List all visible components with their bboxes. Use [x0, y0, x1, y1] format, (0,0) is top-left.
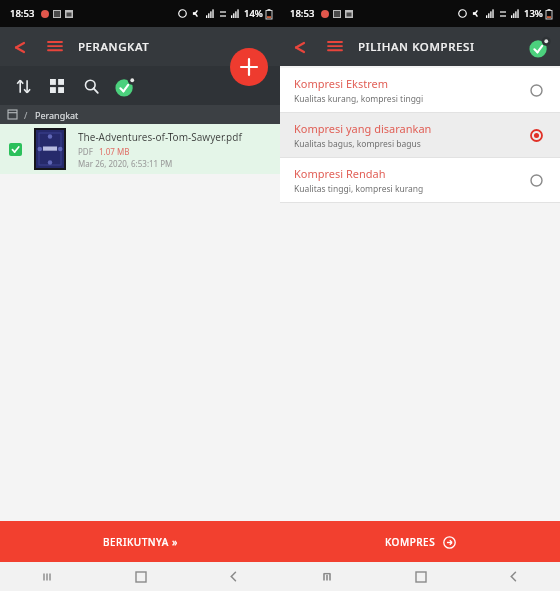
button[interactable]: Back — [280, 28, 318, 66]
staticText: PDF — [78, 146, 93, 157]
staticText: Perangkat — [35, 109, 79, 121]
button[interactable]: KOMPRES — [280, 521, 560, 562]
staticText: Mar 26, 2020, 6:53:11 PM — [78, 158, 173, 169]
button[interactable]: Search — [74, 69, 108, 103]
button[interactable]: BERIKUTNYA » — [0, 521, 280, 562]
button[interactable]: Sort — [6, 69, 40, 103]
staticText: Kompresi Ekstrem — [294, 76, 389, 91]
staticText: PERANGKAT — [78, 39, 150, 55]
staticText: 18:53 — [290, 7, 315, 20]
staticText: Kualitas kurang, kompresi tinggi — [294, 93, 424, 105]
button[interactable]: Menu — [38, 30, 72, 64]
button[interactable]: Home — [94, 562, 187, 591]
staticText: Kompresi yang disarankan — [294, 121, 432, 136]
button[interactable]: Back — [0, 28, 38, 66]
staticText: 14% — [244, 7, 263, 20]
button[interactable]: Kompresi Rendah — [280, 158, 560, 202]
button[interactable]: Selected files — [520, 27, 560, 66]
staticText: Kualitas bagus, kompresi bagus — [294, 138, 421, 150]
button[interactable]: Back — [467, 562, 560, 591]
button[interactable]: Kompresi yang disarankan — [280, 113, 560, 157]
button[interactable]: Grid view — [40, 69, 74, 103]
button[interactable]: Recents — [0, 562, 94, 591]
button[interactable]: Selection — [108, 68, 144, 104]
staticText: 1.07 MB — [99, 146, 130, 157]
button[interactable]: Back — [187, 562, 280, 591]
staticText: Kompresi Rendah — [294, 166, 386, 181]
staticText: / — [24, 109, 28, 121]
staticText: PILIHAN KOMPRESI — [358, 39, 475, 55]
button[interactable]: Add — [230, 48, 268, 86]
staticText: The-Adventures-of-Tom-Sawyer.pdf — [78, 130, 242, 144]
button[interactable]: The-Adventures-of-Tom-Sawyer.pdf — [0, 124, 280, 174]
staticText: KOMPRES — [385, 535, 436, 549]
button[interactable]: Kompresi Ekstrem — [280, 68, 560, 112]
staticText: BERIKUTNYA » — [103, 535, 178, 549]
staticText: 13% — [524, 7, 543, 20]
button[interactable]: Menu — [318, 30, 352, 64]
button[interactable]: Recents — [280, 562, 374, 591]
button[interactable]: Home — [374, 562, 467, 591]
staticText: Kualitas tinggi, kompresi kurang — [294, 183, 424, 195]
staticText: 18:53 — [10, 7, 35, 20]
